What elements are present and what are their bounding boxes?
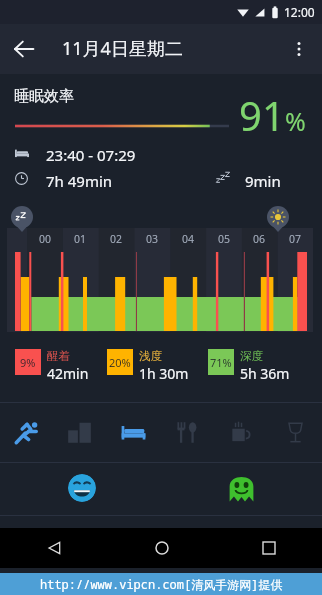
- staticText: 01: [74, 232, 87, 246]
- button[interactable]: Ghost: [228, 473, 255, 503]
- staticText: 11月4日星期二: [62, 36, 183, 61]
- button[interactable]: Home: [108, 528, 215, 568]
- button[interactable]: Recent apps: [215, 528, 322, 568]
- staticText: 深度: [240, 349, 263, 363]
- staticText: 23:40 - 07:29: [46, 145, 136, 165]
- button[interactable]: Mood happy: [68, 474, 96, 502]
- staticText: 05: [218, 232, 231, 246]
- staticText: 02: [110, 232, 123, 246]
- staticText: 07: [289, 232, 302, 246]
- staticText: 04: [182, 232, 195, 246]
- staticText: 9min: [245, 171, 281, 191]
- staticText: 7h 49min: [46, 171, 113, 191]
- staticText: 71%: [210, 355, 232, 370]
- button[interactable]: Exercise: [0, 403, 53, 462]
- button[interactable]: Alcohol: [268, 403, 322, 462]
- staticText: 睡眠效率: [14, 87, 74, 106]
- staticText: 1h 30m: [139, 364, 189, 383]
- staticText: http://www.vipcn.com[清风手游网]提供: [40, 576, 283, 592]
- staticText: 12:00: [284, 4, 315, 20]
- staticText: 06: [253, 232, 266, 246]
- staticText: 5h 36m: [240, 364, 290, 383]
- staticText: 91: [239, 88, 285, 142]
- button[interactable]: Back: [5, 30, 43, 68]
- button[interactable]: More options: [281, 31, 317, 67]
- staticText: 00: [39, 232, 52, 246]
- button[interactable]: Back: [0, 528, 108, 568]
- staticText: 浅度: [139, 349, 162, 363]
- button[interactable]: Coffee: [214, 403, 268, 462]
- staticText: 42min: [47, 364, 89, 383]
- staticText: 20%: [109, 355, 131, 370]
- button[interactable]: Food: [160, 403, 214, 462]
- staticText: 9%: [20, 355, 36, 370]
- button[interactable]: Work: [53, 403, 106, 462]
- staticText: 03: [146, 232, 159, 246]
- button[interactable]: Sleep: [106, 403, 160, 462]
- staticText: %: [285, 104, 306, 138]
- staticText: 醒着: [47, 349, 70, 363]
